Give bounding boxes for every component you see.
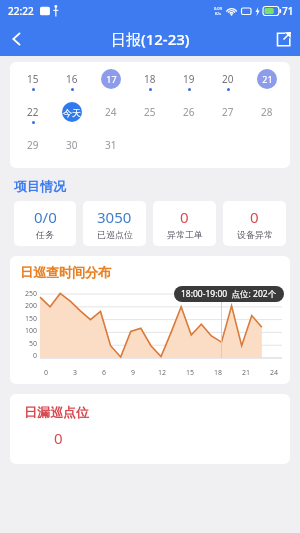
staticText: 22:22 bbox=[8, 4, 34, 18]
staticText: 21 bbox=[242, 368, 251, 378]
button[interactable]: 20 bbox=[208, 69, 247, 95]
staticText: 31 bbox=[105, 138, 117, 152]
button[interactable]: 25 bbox=[130, 102, 169, 128]
staticText: 日巡查时间分布 bbox=[20, 264, 111, 280]
staticText: 已巡点位 bbox=[97, 229, 133, 240]
button[interactable]: 0 bbox=[153, 201, 216, 246]
button[interactable]: 18 bbox=[130, 69, 169, 95]
staticText: 15 bbox=[186, 368, 195, 378]
staticText: 3050 bbox=[97, 207, 132, 227]
staticText: 24 bbox=[270, 368, 279, 378]
button[interactable]: 17 bbox=[91, 69, 130, 95]
staticText: 250 bbox=[25, 289, 38, 299]
button[interactable]: 26 bbox=[169, 102, 208, 128]
staticText: 设备异常 bbox=[237, 229, 273, 240]
button[interactable]: 15 bbox=[14, 69, 52, 95]
button[interactable]: 19 bbox=[169, 69, 208, 95]
staticText: 0 bbox=[250, 207, 259, 227]
button[interactable]: 30 bbox=[52, 135, 91, 161]
staticText: K/s bbox=[215, 11, 221, 16]
staticText: 18:00-19:00 点位: 202个 bbox=[181, 288, 277, 300]
button[interactable]: 3050 bbox=[83, 201, 146, 246]
staticText: 22 bbox=[27, 105, 39, 119]
staticText: 17 bbox=[106, 73, 117, 85]
staticText: 30 bbox=[66, 138, 78, 152]
staticText: 25 bbox=[144, 105, 156, 119]
staticText: 200 bbox=[25, 301, 38, 311]
staticText: 28 bbox=[261, 105, 273, 119]
staticText: 27 bbox=[222, 105, 234, 119]
staticText: 21 bbox=[262, 73, 273, 85]
button[interactable]: 今天 bbox=[52, 102, 91, 128]
button[interactable]: 0 bbox=[223, 201, 286, 246]
staticText: 3 bbox=[73, 368, 78, 378]
staticText: 26 bbox=[183, 105, 195, 119]
staticText: 异常工单 bbox=[167, 229, 203, 240]
button[interactable]: 22 bbox=[14, 102, 52, 128]
staticText: 日报(12-23) bbox=[111, 29, 190, 49]
staticText: 任务 bbox=[36, 229, 54, 240]
staticText: 20 bbox=[222, 72, 234, 86]
staticText: 0 bbox=[180, 207, 189, 227]
button[interactable]: 27 bbox=[208, 102, 247, 128]
staticText: 0 bbox=[44, 368, 49, 378]
button[interactable]: 0/0 bbox=[14, 201, 76, 246]
staticText: 日漏巡点位 bbox=[24, 404, 89, 420]
staticText: 6 bbox=[102, 368, 107, 378]
button[interactable]: 31 bbox=[91, 135, 130, 161]
staticText: 0.09 bbox=[214, 6, 222, 11]
staticText: 18 bbox=[144, 72, 156, 86]
staticText: 100 bbox=[25, 326, 38, 336]
staticText: 0/0 bbox=[34, 207, 57, 227]
staticText: 今天 bbox=[63, 107, 81, 118]
staticText: 24 bbox=[105, 105, 117, 119]
staticText: 50 bbox=[29, 339, 38, 349]
staticText: 16 bbox=[66, 72, 78, 86]
button[interactable]: 16 bbox=[52, 69, 91, 95]
staticText: 0 bbox=[54, 428, 63, 448]
staticText: 0 bbox=[33, 351, 38, 361]
staticText: 18 bbox=[214, 368, 223, 378]
staticText: 29 bbox=[27, 138, 39, 152]
button[interactable]: 29 bbox=[14, 135, 52, 161]
staticText: 15 bbox=[27, 72, 39, 86]
staticText: 项目情况 bbox=[14, 178, 66, 194]
button[interactable]: Back bbox=[0, 22, 34, 56]
button[interactable]: 21 bbox=[247, 69, 286, 95]
button[interactable]: 24 bbox=[91, 102, 130, 128]
staticText: 150 bbox=[25, 314, 38, 324]
button[interactable]: 28 bbox=[247, 102, 286, 128]
staticText: 12 bbox=[158, 368, 167, 378]
staticText: 71 bbox=[282, 4, 294, 18]
staticText: 19 bbox=[183, 72, 195, 86]
button[interactable]: Share bbox=[266, 22, 300, 56]
staticText: 9 bbox=[131, 368, 136, 378]
